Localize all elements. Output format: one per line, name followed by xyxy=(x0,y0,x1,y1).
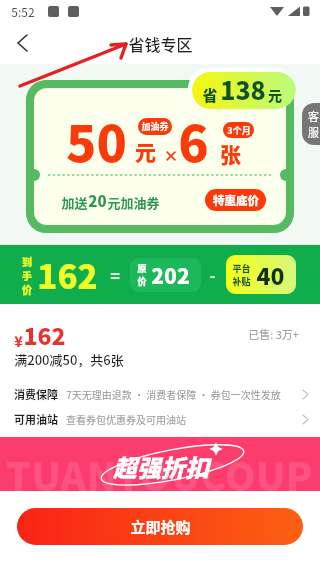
staticText: 138 xyxy=(220,71,266,107)
staticText: 元加油券 xyxy=(107,193,160,212)
staticText: 原 xyxy=(137,262,147,275)
staticText: 7天无理由退款 · 消费者保障 · 券包一次性发放 xyxy=(66,387,281,401)
button[interactable]: 客服 xyxy=(302,103,320,145)
button[interactable]: 消费保障 xyxy=(0,382,320,406)
staticText: 查看券包优惠券及可用油站 xyxy=(66,412,186,426)
staticText: 超强折扣 xyxy=(113,449,209,484)
staticText: 加送 xyxy=(61,193,88,212)
staticText: 162 xyxy=(23,318,66,351)
button[interactable]: 立即抢购 xyxy=(17,508,303,545)
staticText: 162 xyxy=(37,251,98,299)
staticText: 3个月 xyxy=(227,124,251,137)
staticText: 客 xyxy=(308,108,319,124)
staticText: 服 xyxy=(308,124,319,140)
staticText: 已售: 3万+ xyxy=(248,326,299,342)
staticText: 加油券 xyxy=(141,120,169,133)
staticText: ¥ xyxy=(14,331,23,351)
staticText: = xyxy=(110,263,120,286)
staticText: 特惠底价 xyxy=(213,192,259,209)
staticText: 元 xyxy=(268,85,282,105)
staticText: 可用油站 xyxy=(14,411,58,427)
staticText: 消费保障 xyxy=(14,386,58,402)
staticText: 满200减50，共6张 xyxy=(14,350,124,369)
staticText: 补贴 xyxy=(232,275,251,288)
staticText: 到 xyxy=(22,254,32,268)
staticText: 40 xyxy=(256,258,285,291)
staticText: 省 xyxy=(202,84,218,106)
staticText: 20 xyxy=(88,190,107,212)
staticText: 价 xyxy=(137,275,147,288)
staticText: 省钱专区 xyxy=(128,32,193,55)
staticText: 价 xyxy=(22,282,32,296)
staticText: 元 xyxy=(135,136,156,166)
staticText: 手 xyxy=(22,268,32,282)
button[interactable]: Back xyxy=(0,22,44,64)
staticText: 5:52 xyxy=(11,3,35,20)
staticText: - xyxy=(209,263,216,286)
staticText: TUANYOUCOUPON xyxy=(6,446,320,500)
staticText: 202 xyxy=(151,260,190,290)
staticText: 6 xyxy=(178,104,209,176)
staticText: 张 xyxy=(220,139,241,169)
button[interactable]: 可用油站 xyxy=(0,407,320,431)
staticText: 立即抢购 xyxy=(130,516,191,538)
staticText: 50 xyxy=(66,104,127,176)
staticText: 平台 xyxy=(232,262,251,275)
staticText: × xyxy=(163,145,179,167)
